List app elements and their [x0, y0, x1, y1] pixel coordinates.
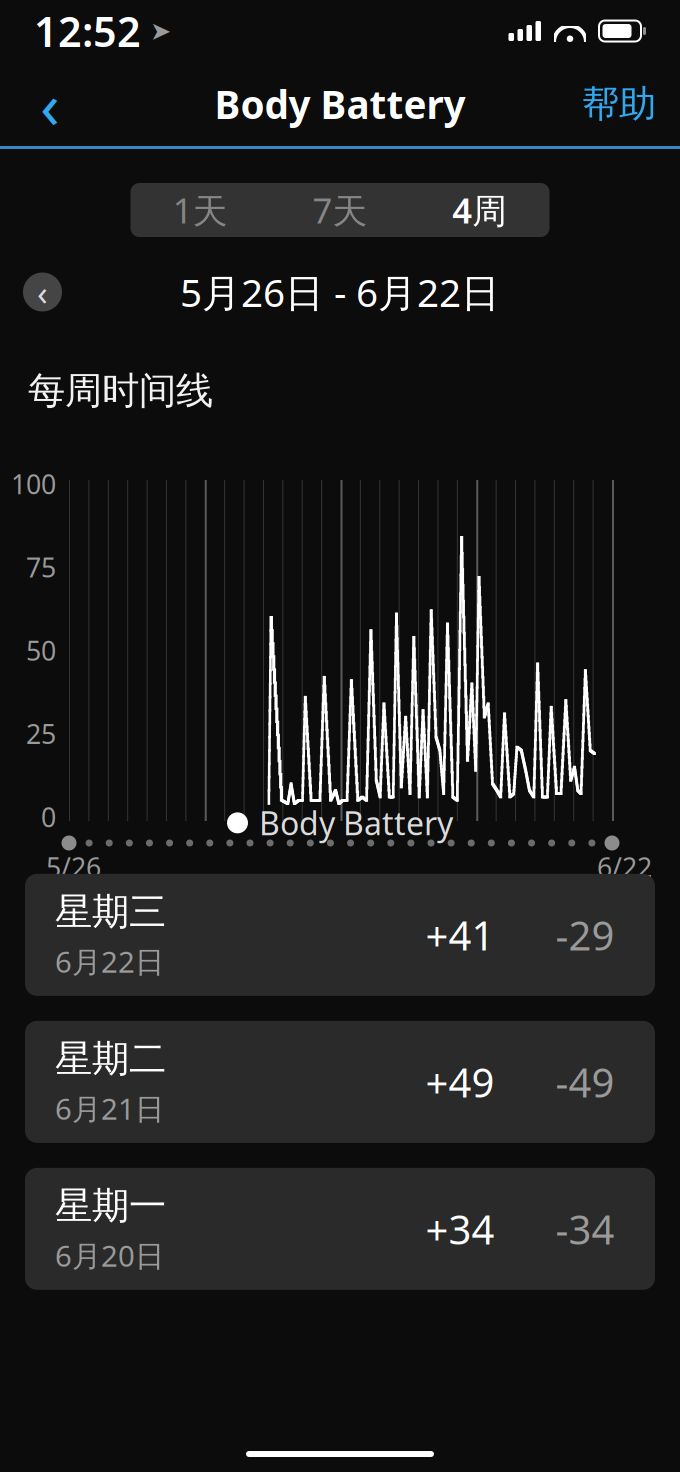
button[interactable]: 星期三 [25, 874, 655, 996]
staticText: +34 [425, 1202, 494, 1255]
button[interactable]: 星期二 [25, 1021, 655, 1143]
staticText: 6月20日 [55, 1236, 164, 1275]
button[interactable]: 4周 [410, 183, 549, 237]
staticText: +49 [425, 1055, 494, 1108]
staticText: 4周 [452, 187, 507, 233]
staticText: 6月21日 [55, 1089, 164, 1128]
staticText: 50 [26, 633, 56, 668]
staticText: 5/26 [46, 849, 101, 885]
staticText: Body Battery [214, 78, 465, 130]
staticText: ‹ [40, 61, 60, 146]
staticText: -34 [555, 1202, 614, 1255]
staticText: -29 [555, 908, 614, 961]
button[interactable]: Back [18, 72, 82, 136]
staticText: 0 [41, 799, 56, 835]
button[interactable]: Previous period [23, 272, 62, 311]
staticText: 5月26日 - 6月22日 [180, 266, 500, 318]
staticText: 75 [26, 549, 56, 585]
staticText: 帮助 [582, 81, 656, 127]
button[interactable]: 1天 [130, 183, 270, 237]
staticText: 12:52 [34, 4, 141, 58]
staticText: 100 [11, 466, 56, 502]
staticText: ➤ [150, 17, 171, 45]
staticText: 星期三 [55, 889, 166, 935]
staticText: 25 [26, 716, 56, 751]
staticText: 6月22日 [55, 942, 164, 981]
staticText: 7天 [312, 187, 367, 233]
staticText: Body Battery [259, 802, 453, 844]
staticText: 星期二 [55, 1036, 166, 1082]
staticText: 每周时间线 [28, 368, 213, 414]
staticText: 星期一 [55, 1183, 166, 1229]
staticText: 1天 [173, 187, 228, 233]
staticText: ‹ [37, 269, 48, 315]
button[interactable]: 星期一 [25, 1168, 655, 1290]
staticText: +41 [425, 908, 494, 961]
staticText: -49 [555, 1055, 614, 1108]
staticText: 6/22 [597, 849, 652, 885]
button[interactable]: 7天 [270, 183, 410, 237]
button[interactable]: 帮助 [576, 72, 662, 136]
